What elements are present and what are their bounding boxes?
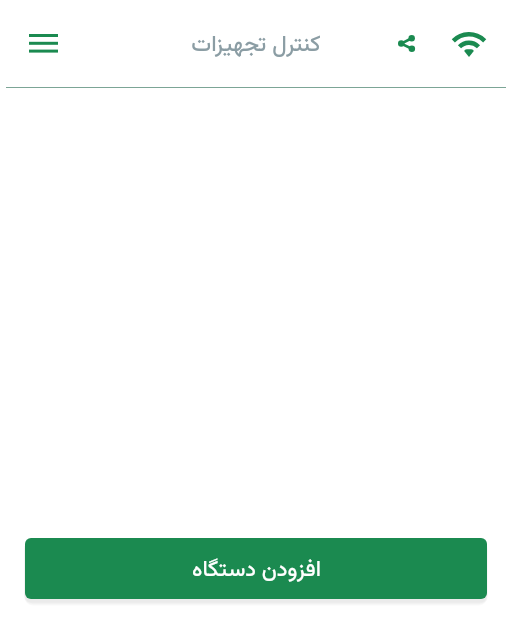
button[interactable]: Menu xyxy=(15,15,71,71)
staticText: کنترل تجهیزات xyxy=(191,28,321,63)
button[interactable]: افزودن دستگاه xyxy=(25,538,487,599)
button[interactable]: Share xyxy=(384,21,428,65)
button[interactable]: Wi-Fi xyxy=(446,21,491,66)
staticText: افزودن دستگاه xyxy=(192,553,321,587)
